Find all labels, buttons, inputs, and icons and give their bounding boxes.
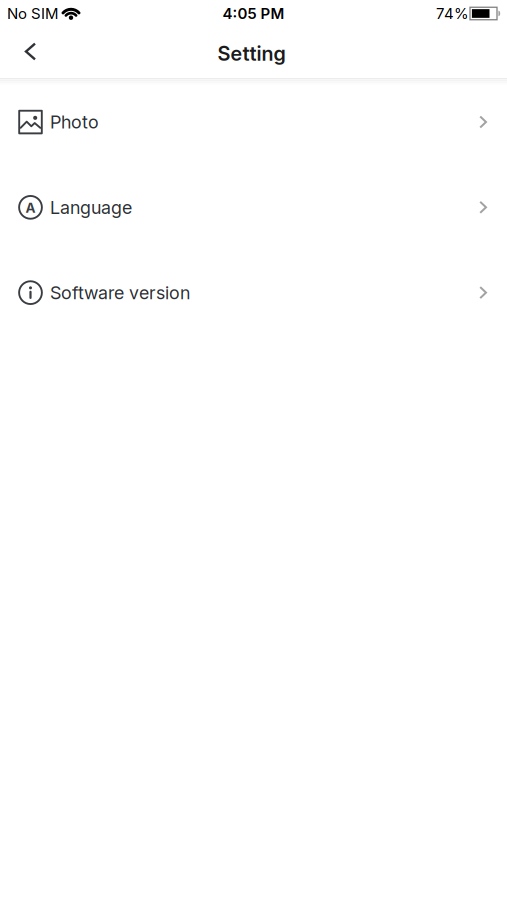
staticText: Software version [50, 282, 190, 303]
staticText: No SIM [7, 5, 59, 22]
staticText: Language [50, 197, 132, 218]
staticText: 74% [436, 5, 469, 22]
button[interactable]: Back [0, 29, 36, 76]
button[interactable]: A [0, 165, 507, 250]
staticText: A [25, 200, 35, 216]
staticText: Setting [217, 42, 285, 65]
button[interactable]: Photo [0, 79, 507, 165]
staticText: Photo [50, 111, 99, 133]
button[interactable]: Software version [0, 250, 507, 335]
staticText: 4:05 PM [222, 5, 284, 22]
